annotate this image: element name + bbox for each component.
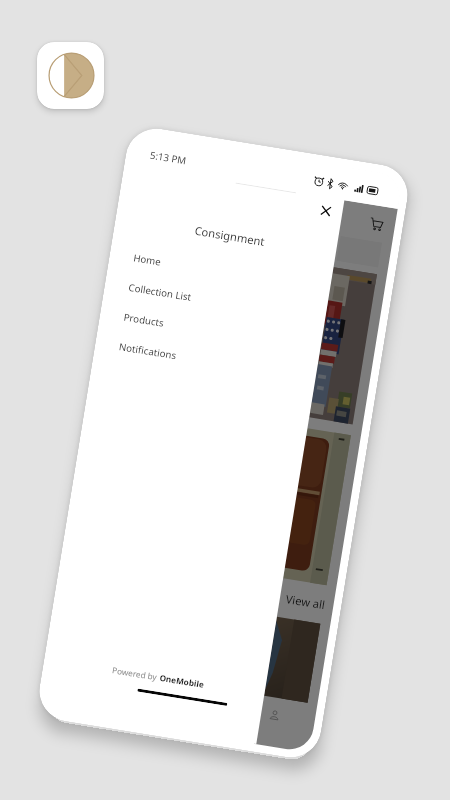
staticText: Products — [123, 310, 165, 330]
button[interactable]: View all — [65, 544, 336, 625]
staticText: Notifications — [118, 340, 177, 362]
staticText: Home — [132, 251, 162, 269]
staticText: Powered by — [111, 664, 161, 683]
staticText: OneMobile — [159, 672, 205, 690]
button[interactable]: Notifications — [102, 335, 317, 387]
button[interactable]: Products — [107, 305, 322, 357]
staticText: View all — [285, 591, 327, 612]
button[interactable]: Collection List — [111, 275, 327, 327]
button[interactable]: Account — [268, 709, 281, 721]
staticText: Consignment — [122, 211, 337, 260]
staticText: 5:13 PM — [149, 149, 188, 167]
button[interactable]: Shopping cart — [368, 215, 385, 233]
button[interactable]: Home — [116, 246, 331, 298]
button[interactable]: Consignment app icon — [37, 42, 104, 109]
staticText: Collection List — [128, 281, 193, 304]
button[interactable]: Close navigation drawer — [314, 199, 338, 223]
